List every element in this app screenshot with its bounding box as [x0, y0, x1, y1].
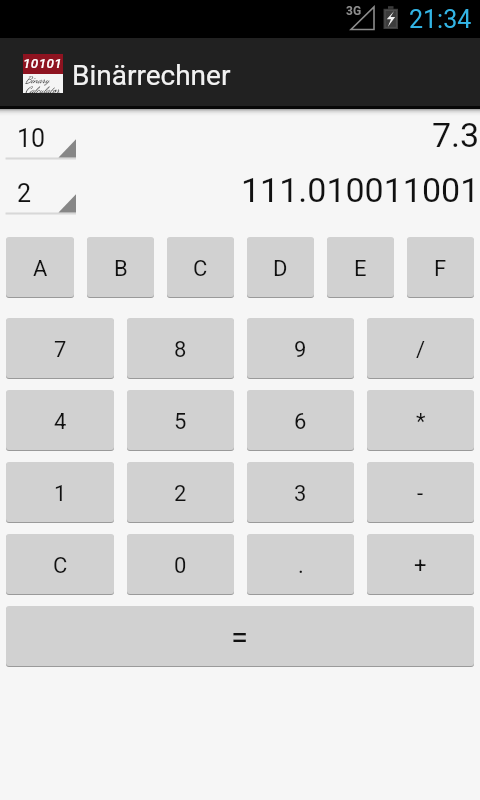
button[interactable]: . [247, 534, 354, 594]
button[interactable]: C [6, 534, 114, 594]
button[interactable]: = [6, 606, 474, 666]
staticText: 8 [174, 337, 187, 363]
button[interactable]: 8 [127, 318, 234, 378]
staticText: 4 [54, 409, 67, 435]
staticText: 2 [174, 481, 187, 507]
staticText: 21:34 [409, 5, 472, 34]
staticText: Binärrechner [72, 59, 231, 92]
staticText: 0 [174, 553, 187, 579]
staticText: 6 [294, 409, 307, 435]
button[interactable]: 4 [6, 390, 114, 450]
staticText: 1 [54, 481, 67, 507]
button[interactable]: 1 [6, 462, 114, 522]
staticText: 10 [17, 124, 46, 153]
button[interactable]: 3 [247, 462, 354, 522]
staticText: C [53, 553, 68, 579]
staticText: B [114, 256, 128, 282]
staticText: = [231, 619, 249, 655]
staticText: C [193, 256, 208, 282]
staticText: 2 [17, 179, 32, 208]
staticText: . [298, 553, 304, 579]
staticText: / [416, 337, 426, 363]
staticText: 10101 [23, 55, 63, 71]
staticText: Binary [25, 74, 49, 85]
button[interactable]: 2 [127, 462, 234, 522]
button[interactable]: + [367, 534, 474, 594]
button[interactable]: 6 [247, 390, 354, 450]
button[interactable]: 0 [127, 534, 234, 594]
button[interactable]: / [367, 318, 474, 378]
button[interactable]: E [327, 237, 394, 297]
button[interactable]: D [247, 237, 314, 297]
button[interactable]: 9 [247, 318, 354, 378]
staticText: 9 [294, 337, 307, 363]
button[interactable]: App icon [23, 54, 63, 93]
button[interactable]: 5 [127, 390, 234, 450]
button[interactable]: A [6, 237, 74, 297]
staticText: 111.010011001 [241, 170, 480, 210]
staticText: 7.3 [432, 115, 480, 155]
button[interactable]: Base 2 [0, 164, 76, 215]
button[interactable]: 7 [6, 318, 114, 378]
staticText: E [354, 256, 367, 282]
staticText: 3 [294, 481, 307, 507]
staticText: A [33, 256, 48, 282]
button[interactable]: * [367, 390, 474, 450]
button[interactable]: Base 10 [0, 109, 76, 160]
staticText: Calculator [25, 84, 60, 93]
staticText: * [416, 409, 426, 435]
staticText: F [434, 256, 447, 282]
staticText: 3G [346, 4, 362, 18]
staticText: + [414, 553, 427, 579]
button[interactable]: F [407, 237, 474, 297]
button[interactable]: C [167, 237, 234, 297]
staticText: - [417, 481, 424, 507]
button[interactable]: - [367, 462, 474, 522]
staticText: D [273, 256, 288, 282]
staticText: 5 [174, 409, 187, 435]
staticText: 7 [54, 337, 67, 363]
button[interactable]: B [87, 237, 154, 297]
